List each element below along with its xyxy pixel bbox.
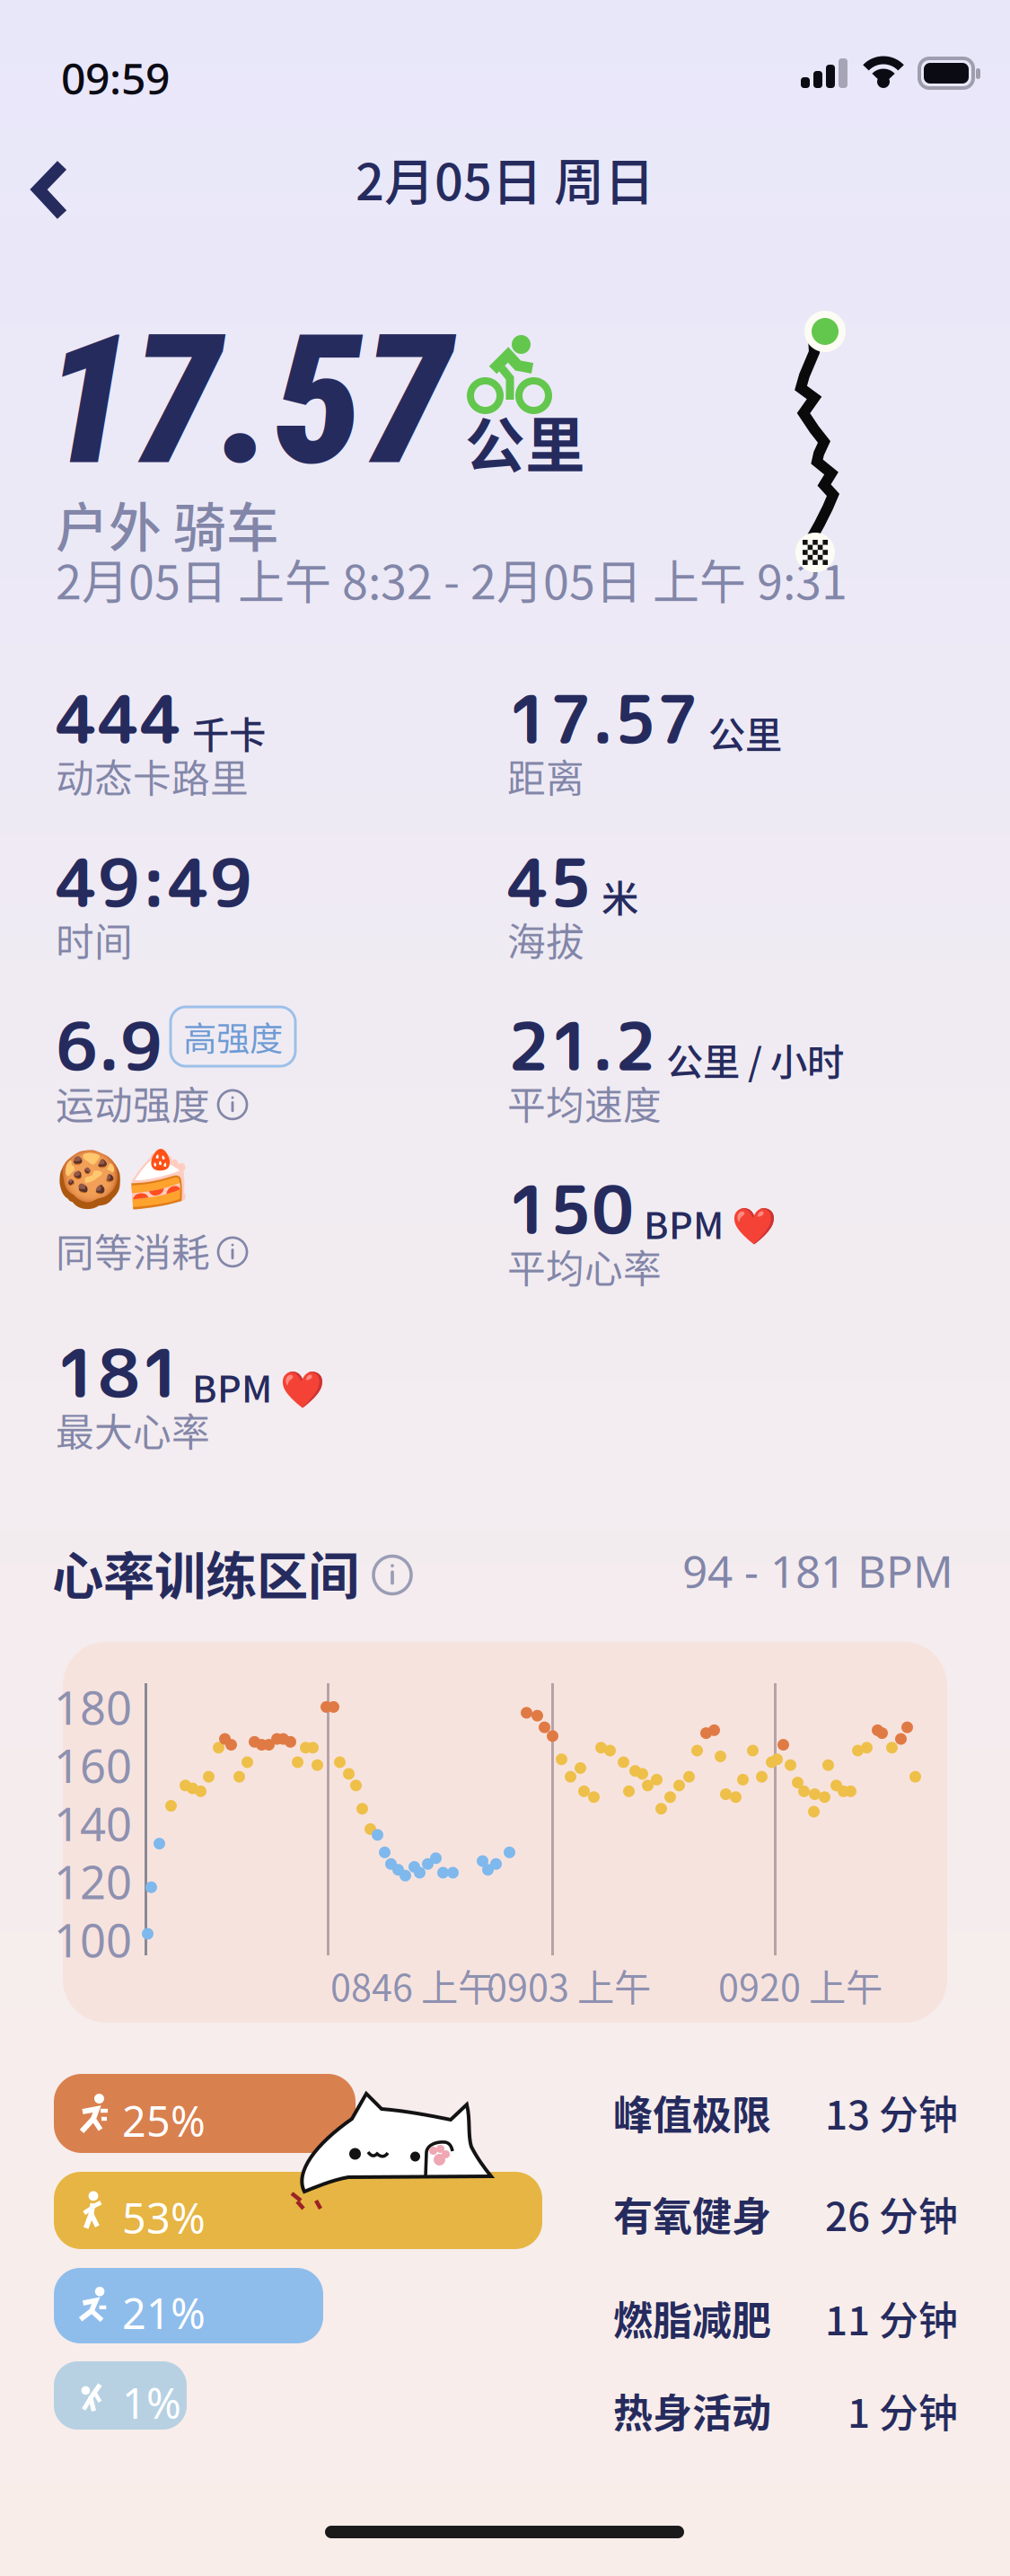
staticText: 160 [54,1734,132,1796]
staticText: 0903 上午 [487,1958,651,2012]
staticText: ❤️ [280,1368,325,1410]
staticText: 94 - 181 BPM [682,1540,953,1601]
staticText: 有氧健身 [613,2185,771,2243]
staticText: 热身活动 [613,2382,771,2439]
staticText: ❤️ [732,1205,777,1247]
staticText: 120 [54,1850,132,1912]
staticText: 距离 [507,748,584,804]
staticText: 最大心率 [56,1402,210,1458]
staticText: 444 [56,673,182,765]
staticText: 181 [56,1327,182,1419]
staticText: 21.2 [507,1000,656,1092]
staticText: 运动强度 [56,1075,210,1131]
staticText: 公里 / 小时 [666,1032,844,1086]
staticText: 高强度 [183,1012,283,1061]
staticText: 0846 上午 [330,1958,495,2012]
staticText: BPM [192,1359,272,1413]
staticText: 150 [507,1163,634,1255]
staticText: 公里 [708,705,782,759]
button[interactable]: Back [0,0,1010,2576]
staticText: 公里 [465,398,585,485]
staticText: 同等消耗 [56,1222,210,1278]
staticText: 峰值极限 [613,2084,771,2141]
staticText: 🍪🍰 [56,1147,192,1212]
staticText: 心率训练区间 [52,1535,359,1610]
staticText: 海拔 [507,912,584,967]
staticText: 21% [122,2284,206,2341]
staticText: 6.9 [56,1000,162,1092]
staticText: 17.57 [507,673,698,765]
staticText: 平均速度 [507,1075,662,1131]
staticText: 燃脂减肥 [613,2289,771,2347]
staticText: 1% [122,2374,181,2431]
staticText: 米 [602,869,638,923]
staticText: 1 分钟 [848,2382,958,2439]
staticText: 140 [54,1792,132,1854]
staticText: 25% [122,2092,206,2149]
staticText: 平均心率 [507,1239,662,1294]
staticText: BPM [644,1196,724,1250]
staticText: 千卡 [192,705,266,759]
staticText: 100 [54,1909,132,1971]
staticText: 2月05日 上午 8:32 - 2月05日 上午 9:31 [56,545,848,613]
staticText: 180 [54,1676,132,1738]
staticText: 45 [507,836,592,928]
staticText: 0920 上午 [718,1958,883,2012]
staticText: 11 分钟 [825,2289,958,2347]
staticText: 时间 [56,912,133,967]
staticText: 53% [122,2189,206,2246]
staticText: 26 分钟 [825,2185,958,2243]
staticText: 户外 骑车 [56,486,279,562]
staticText: 2月05日 周日 [356,142,654,215]
staticText: 动态卡路里 [56,748,249,804]
staticText: 13 分钟 [825,2084,958,2141]
staticText: 17.57 [43,296,452,506]
staticText: 09:59 [61,49,170,107]
staticText: 49:49 [56,836,252,928]
